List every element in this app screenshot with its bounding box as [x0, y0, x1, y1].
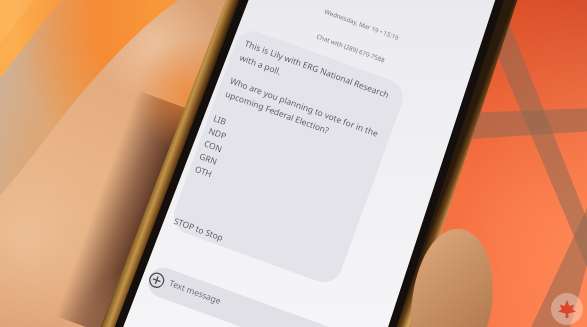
button[interactable]	[0, 0, 587, 327]
